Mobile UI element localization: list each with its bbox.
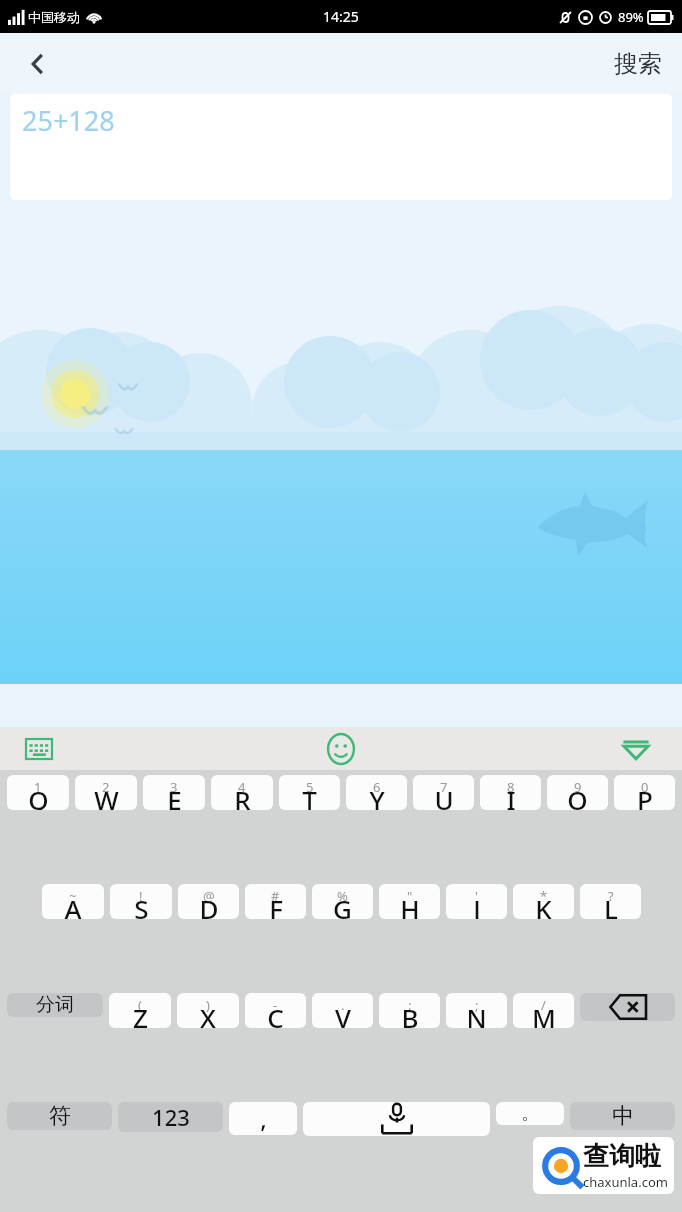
button[interactable]: # (245, 884, 306, 919)
staticText: @ (203, 887, 215, 905)
staticText: / (541, 996, 546, 1014)
staticText: 搜索 (614, 49, 662, 79)
staticText: 分词 (36, 993, 74, 1017)
staticText: # (271, 887, 280, 905)
staticText: D (199, 891, 219, 919)
button[interactable]: Keyboard layout (18, 728, 60, 770)
button[interactable]: ( (109, 993, 171, 1028)
button[interactable]: 搜索 (614, 49, 662, 79)
staticText: O (567, 782, 588, 810)
button[interactable]: ' (446, 884, 507, 919)
staticText: : (408, 996, 412, 1014)
button[interactable]: 5 (279, 775, 340, 810)
button[interactable]: Emoji (319, 727, 363, 770)
button[interactable]: - (245, 993, 306, 1028)
staticText: * (540, 887, 548, 905)
button[interactable]: 符 (7, 1102, 112, 1130)
staticText: 6 (373, 778, 381, 796)
button[interactable]: 1 (7, 775, 69, 810)
staticText: ; (475, 996, 479, 1014)
staticText: 3 (170, 778, 178, 796)
button[interactable]: ? (580, 884, 641, 919)
button[interactable]: 123 (118, 1102, 223, 1132)
button[interactable]: 4 (211, 775, 273, 810)
button[interactable]: ~ (42, 884, 104, 919)
button[interactable]: 25+128 (10, 94, 672, 200)
staticText: - (273, 996, 278, 1014)
button[interactable]: ) (177, 993, 239, 1028)
staticText: J (473, 891, 481, 919)
staticText: ~ (69, 887, 77, 905)
staticText: 123 (152, 1102, 190, 1132)
staticText: A (64, 891, 82, 919)
staticText: V (335, 1000, 351, 1028)
button[interactable]: Space (303, 1102, 490, 1136)
staticText: I (506, 782, 516, 810)
staticText: 。 (521, 1102, 539, 1125)
staticText: ' (475, 887, 478, 905)
staticText: N (466, 1000, 487, 1028)
staticText: ! (139, 887, 143, 905)
button[interactable]: Back (12, 38, 64, 90)
staticText: 0 (641, 778, 649, 796)
button[interactable]: 2 (75, 775, 137, 810)
staticText: 中国移动 (28, 9, 80, 25)
staticText: 8 (507, 778, 515, 796)
staticText: " (407, 887, 413, 905)
staticText: K (535, 891, 552, 919)
button[interactable]: 9 (547, 775, 608, 810)
staticText: S (134, 891, 149, 919)
staticText: T (302, 782, 317, 810)
button[interactable]: * (513, 884, 574, 919)
staticText: 25+128 (22, 102, 115, 139)
staticText: , (260, 1102, 267, 1135)
staticText: ( (138, 996, 142, 1014)
staticText: Z (133, 1000, 148, 1028)
staticText: U (434, 782, 454, 810)
button[interactable]: ! (110, 884, 172, 919)
staticText: R (234, 782, 251, 810)
staticText: P (637, 782, 653, 810)
staticText: 89% (618, 8, 644, 26)
staticText: Y (369, 782, 385, 810)
staticText: ) (206, 996, 210, 1014)
staticText: 9 (574, 778, 582, 796)
staticText: 1 (34, 778, 42, 796)
staticText: E (167, 782, 182, 810)
button[interactable]: 分词 (7, 993, 103, 1017)
staticText: H (400, 891, 420, 919)
staticText: chaxunla.com (583, 1173, 668, 1191)
button[interactable]: 3 (143, 775, 205, 810)
button[interactable]: Backspace (580, 993, 675, 1021)
staticText: C (267, 1000, 284, 1028)
button[interactable]: . (312, 993, 373, 1028)
staticText: 2 (102, 778, 110, 796)
staticText: 5 (306, 778, 314, 796)
button[interactable]: @ (178, 884, 239, 919)
button[interactable]: % (312, 884, 373, 919)
staticText: 符 (49, 1102, 71, 1130)
staticText: F (269, 891, 283, 919)
button[interactable]: 6 (346, 775, 407, 810)
button[interactable]: Hide keyboard (614, 727, 658, 770)
staticText: B (401, 1000, 419, 1028)
button[interactable]: 8 (480, 775, 541, 810)
staticText: 14:25 (323, 7, 359, 26)
staticText: W (94, 782, 119, 810)
button[interactable]: 7 (413, 775, 474, 810)
button[interactable]: 0 (614, 775, 675, 810)
button[interactable]: 。 (496, 1102, 564, 1125)
button[interactable]: / (513, 993, 574, 1028)
button[interactable]: , (229, 1102, 297, 1135)
button[interactable]: ; (446, 993, 507, 1028)
button[interactable]: 中 (570, 1102, 675, 1130)
staticText: 中 (612, 1102, 634, 1130)
staticText: X (200, 1000, 216, 1028)
staticText: M (532, 1000, 556, 1028)
button[interactable]: " (379, 884, 440, 919)
staticText: 4 (238, 778, 246, 796)
button[interactable]: : (379, 993, 440, 1028)
staticText: 7 (440, 778, 448, 796)
staticText: G (333, 891, 352, 919)
staticText: Q (28, 782, 49, 810)
